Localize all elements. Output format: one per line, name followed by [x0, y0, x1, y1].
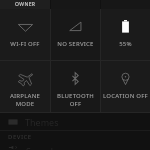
staticText: NO SERVICE	[57, 40, 94, 48]
button[interactable]: Mobile signal	[51, 9, 100, 60]
staticText: WI-FI OFF	[10, 40, 40, 48]
button[interactable]: Bluetooth	[51, 61, 100, 112]
button[interactable]: Battery	[101, 9, 150, 60]
button[interactable]: Themes	[0, 113, 150, 130]
other: Sound	[8, 145, 19, 150]
button[interactable]: Wi-Fi	[0, 9, 50, 60]
staticText: Themes	[25, 116, 59, 128]
button[interactable]: Location	[101, 61, 150, 112]
button[interactable]: OWNER	[0, 0, 50, 9]
staticText: DEVICE	[8, 133, 32, 141]
other: Themes	[8, 117, 18, 127]
button[interactable]: Airplane mode	[0, 61, 50, 112]
staticText: OWNER	[15, 1, 36, 8]
staticText: AIRPLANE MODE	[1, 92, 49, 108]
staticText: 55%	[119, 40, 132, 48]
staticText: BLUETOOTH OFF	[52, 92, 99, 108]
staticText: LOCATION OFF	[103, 92, 148, 100]
